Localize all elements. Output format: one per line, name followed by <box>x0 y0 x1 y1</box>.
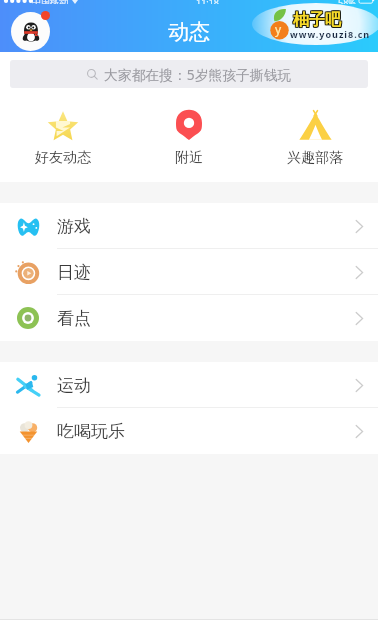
staticText: 柚子吧 <box>292 9 340 29</box>
staticText: www.youzi8.cn <box>290 28 371 40</box>
staticText: 日迹 <box>57 262 91 283</box>
button[interactable]: 看点 <box>0 295 378 341</box>
staticText: 游戏 <box>57 216 91 237</box>
staticText: 柚子吧 <box>294 11 342 31</box>
button[interactable]: 运动 <box>0 362 378 408</box>
staticText: 运动 <box>57 375 91 396</box>
staticText: 柚子吧 <box>294 9 342 29</box>
button[interactable]: 兴趣部落 <box>252 88 378 167</box>
staticText: 柚子吧 <box>293 11 341 31</box>
staticText: 柚子吧 <box>292 10 340 30</box>
staticText: 大家都在搜：5岁熊孩子撕钱玩 <box>104 65 292 84</box>
button[interactable]: 好友动态 <box>0 88 126 167</box>
staticText: 中国移动 <box>32 0 68 4</box>
staticText: 动态 <box>168 19 210 45</box>
staticText: 柚子吧 <box>293 9 341 29</box>
button[interactable]: Profile <box>11 12 50 51</box>
staticText: 58% <box>338 0 356 4</box>
staticText: y <box>275 21 282 37</box>
staticText: 柚子吧 <box>293 10 341 30</box>
staticText: 附近 <box>175 149 203 167</box>
staticText: 柚子吧 <box>294 10 342 30</box>
staticText: 11:18 <box>196 0 220 4</box>
button[interactable]: 大家都在搜：5岁熊孩子撕钱玩 <box>10 60 368 88</box>
button[interactable]: 吃喝玩乐 <box>0 408 378 454</box>
staticText: 兴趣部落 <box>287 149 343 167</box>
staticText: 看点 <box>57 308 91 329</box>
button[interactable]: 日迹 <box>0 249 378 295</box>
button[interactable]: 附近 <box>126 88 252 167</box>
staticText: 好友动态 <box>35 149 91 167</box>
staticText: 柚子吧 <box>292 11 340 31</box>
staticText: 吃喝玩乐 <box>57 421 125 442</box>
button[interactable]: 游戏 <box>0 203 378 249</box>
